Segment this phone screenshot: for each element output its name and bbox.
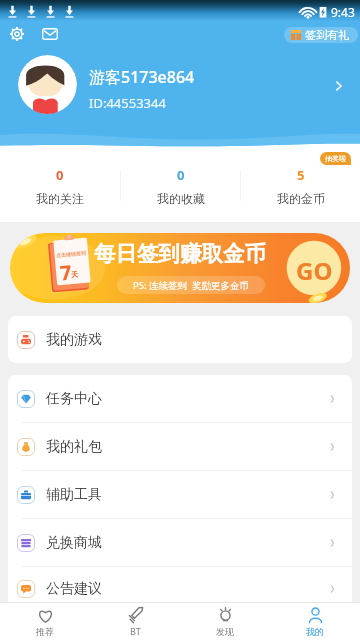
staticText: 公告建议	[46, 580, 102, 598]
staticText: 兑换商城	[46, 534, 102, 552]
button[interactable]: Settings	[6, 23, 28, 45]
button[interactable]: Messages	[39, 23, 61, 45]
button[interactable]: 我的礼包	[8, 423, 352, 470]
staticText: GO	[296, 254, 333, 287]
button[interactable]: 发现	[180, 603, 270, 640]
button[interactable]: 0	[0, 160, 120, 212]
button[interactable]: 推荐	[0, 603, 90, 640]
button[interactable]: 抽奖啦	[320, 152, 351, 165]
button[interactable]: 辅助工具	[8, 471, 352, 518]
staticText: 我的金币	[277, 191, 325, 206]
staticText: 签到有礼	[305, 28, 349, 42]
staticText: 0	[56, 166, 64, 184]
staticText: 每日签到赚取金币	[94, 240, 266, 267]
staticText: PS: 连续签到 奖励更多金币	[133, 279, 249, 292]
button[interactable]: 兑换商城	[8, 519, 352, 566]
button[interactable]: 5	[241, 160, 360, 212]
button[interactable]: 我的游戏	[8, 316, 352, 363]
staticText: 抽奖啦	[325, 154, 346, 163]
button[interactable]: 游客5173e864	[0, 50, 360, 122]
staticText: 7	[59, 258, 73, 286]
button[interactable]: 任务中心	[8, 375, 352, 422]
staticText: BT	[130, 625, 141, 637]
staticText: 9:43	[331, 4, 355, 20]
staticText: 0	[177, 166, 185, 184]
staticText: 点击继续签到	[56, 250, 86, 258]
button[interactable]: 我的	[270, 603, 360, 640]
staticText: 游客5173e864	[89, 66, 195, 88]
staticText: 我的收藏	[157, 191, 205, 206]
button[interactable]: 点击继续签到	[10, 233, 350, 303]
staticText: 发现	[216, 626, 234, 637]
staticText: 我的游戏	[46, 331, 102, 349]
staticText: 我的礼包	[46, 438, 102, 456]
staticText: 天	[71, 270, 78, 279]
staticText: 推荐	[36, 626, 54, 637]
staticText: ID:44553344	[89, 94, 166, 112]
button[interactable]: 公告建议	[8, 567, 352, 610]
staticText: 5	[297, 166, 305, 184]
button[interactable]: 签到有礼	[284, 27, 358, 43]
staticText: 我的	[306, 626, 324, 637]
staticText: 任务中心	[46, 390, 102, 408]
button[interactable]: BT	[90, 603, 180, 640]
staticText: 我的关注	[36, 191, 84, 206]
button[interactable]: 0	[121, 160, 240, 212]
staticText: 辅助工具	[46, 486, 102, 504]
